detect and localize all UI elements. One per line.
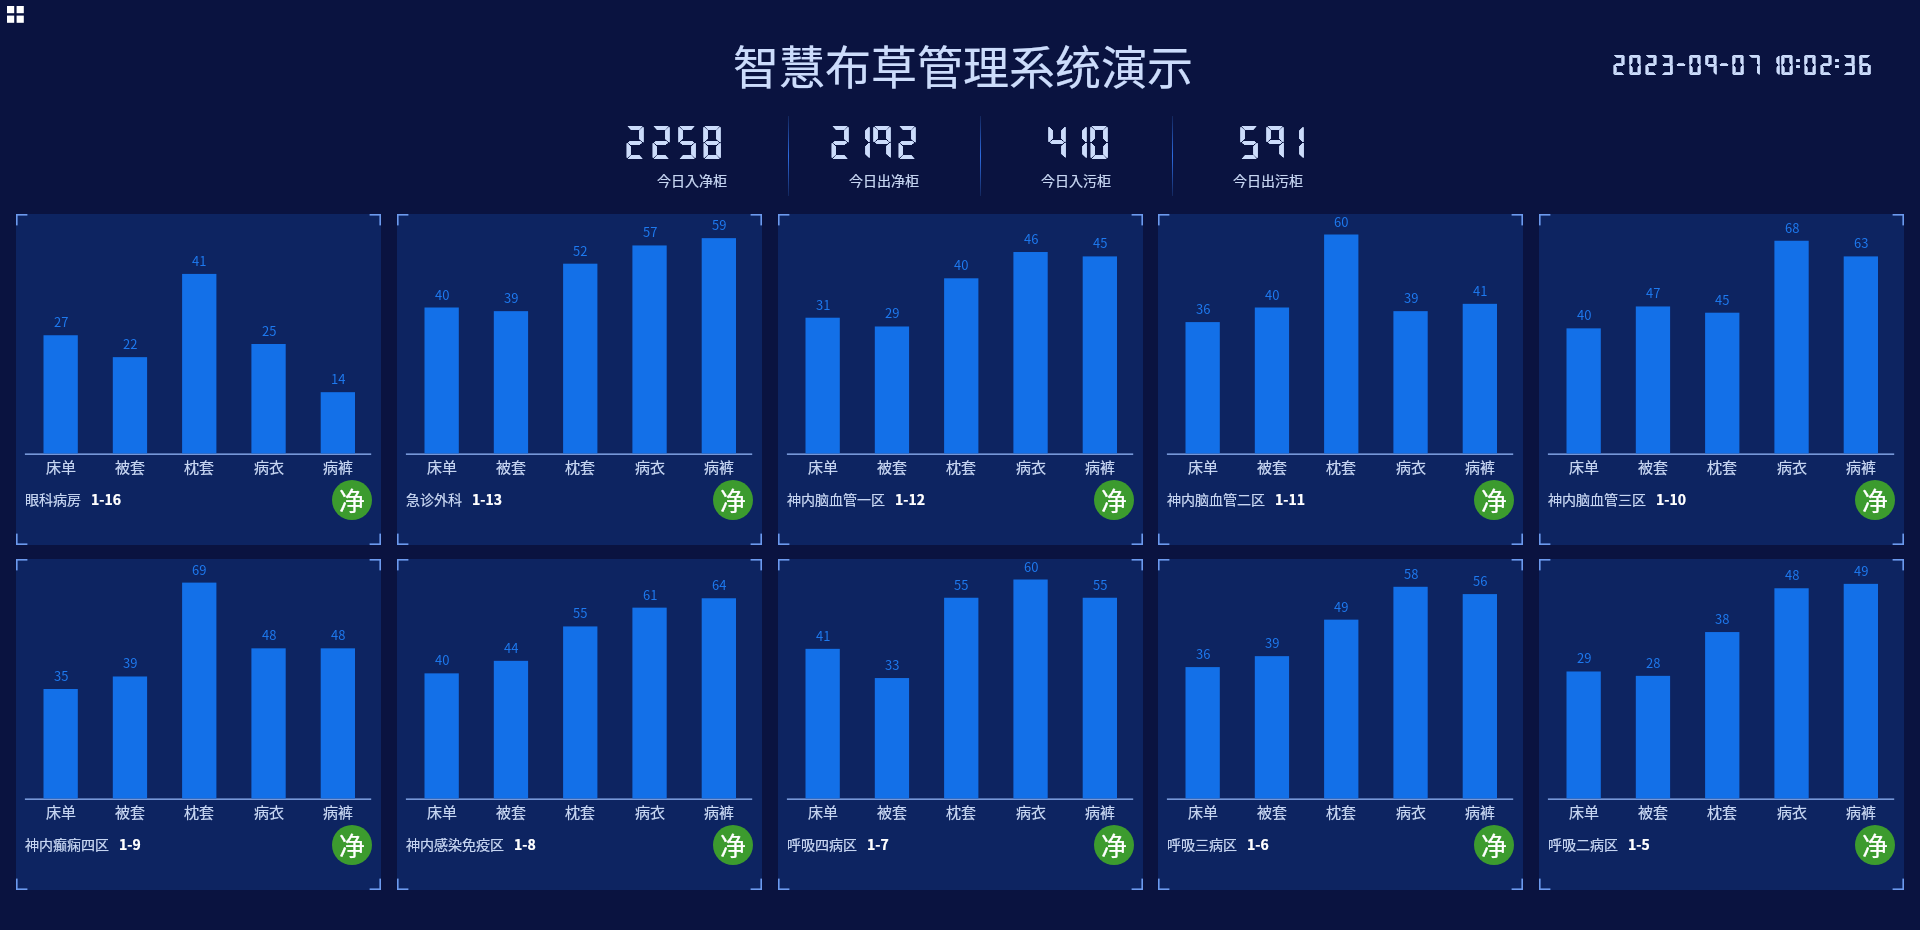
staticText: 神内癫痫四区 (25, 834, 109, 854)
button[interactable]: 35 (16, 559, 381, 890)
staticText: 9 (1703, 52, 1719, 78)
staticText: 0 (1779, 52, 1795, 78)
staticText (1757, 52, 1773, 78)
staticText: 2 (1818, 52, 1834, 78)
button[interactable]: 净 clean status (332, 480, 372, 520)
staticText: 6 (1857, 52, 1873, 78)
staticText: 2 (622, 121, 648, 162)
staticText: 枕套 (565, 801, 596, 823)
button[interactable]: 40 (397, 214, 762, 545)
staticText: 3 (1659, 52, 1675, 78)
staticText: 28 (1646, 653, 1661, 672)
staticText: 49 (1854, 561, 1869, 580)
staticText: 1-10 (1656, 489, 1686, 509)
staticText: 8 (699, 121, 725, 162)
staticText: 48 (331, 625, 346, 644)
staticText (1757, 52, 1773, 78)
staticText: 3 (1841, 52, 1857, 78)
staticText: 3 (1659, 52, 1675, 78)
staticText: 2 (827, 121, 853, 162)
button[interactable]: 40 (1539, 214, 1904, 545)
staticText: 2 (1818, 52, 1834, 78)
staticText: 枕套 (1707, 801, 1738, 823)
staticText: 36 (1196, 299, 1211, 318)
staticText: 5 (1236, 121, 1262, 162)
staticText: 病裤 (704, 801, 735, 823)
staticText: 39 (504, 288, 519, 307)
staticText: 净 (720, 481, 747, 519)
staticText: 1 (1282, 121, 1308, 162)
staticText: 9 (869, 121, 895, 162)
staticText: 0 (1802, 52, 1818, 78)
button[interactable]: 27 (16, 214, 381, 545)
staticText: 病裤 (1085, 456, 1116, 478)
button[interactable]: 净 clean status (1855, 480, 1895, 520)
button[interactable]: 31 (778, 214, 1143, 545)
staticText: 9 (1262, 121, 1288, 162)
staticText: 0 (1627, 52, 1643, 78)
staticText: 3 (1841, 52, 1857, 78)
staticText: 病衣 (635, 801, 666, 823)
staticText: 1 (1766, 52, 1782, 78)
staticText: 52 (573, 241, 588, 260)
staticText: 36 (1196, 644, 1211, 663)
staticText: 2 (648, 121, 674, 162)
staticText: 2 (894, 121, 920, 162)
staticText: 1-5 (1628, 834, 1650, 854)
button[interactable]: 41 (778, 559, 1143, 890)
staticText: 41 (192, 251, 207, 270)
staticText: 60 (1024, 557, 1039, 576)
staticText: 急诊外科 (406, 489, 462, 509)
staticText: 35 (54, 666, 69, 685)
button[interactable]: 36 (1158, 559, 1523, 890)
button[interactable]: 净 clean status (1474, 480, 1514, 520)
staticText: 9 (869, 121, 895, 162)
button[interactable]: 36 (1158, 214, 1523, 545)
staticText: 病裤 (1846, 456, 1877, 478)
button[interactable]: 净 clean status (713, 480, 753, 520)
staticText: - (1716, 52, 1732, 78)
staticText: 40 (1577, 305, 1592, 324)
button[interactable]: Menu (6, 5, 26, 25)
staticText: 9 (869, 121, 895, 162)
staticText: 呼吸四病区 (787, 834, 857, 854)
staticText: 被套 (115, 801, 146, 823)
staticText: 床单 (1569, 456, 1600, 478)
staticText: 2 (1818, 52, 1834, 78)
staticText: 8 (699, 121, 725, 162)
staticText: : (1829, 52, 1845, 78)
button[interactable]: 29 (1539, 559, 1904, 890)
button[interactable]: 净 clean status (332, 825, 372, 865)
staticText: 病衣 (1777, 801, 1808, 823)
staticText: - (1716, 52, 1732, 78)
staticText: 今日出净柜 (849, 170, 919, 190)
staticText: 0 (1730, 52, 1746, 78)
staticText: 1 (1065, 121, 1091, 162)
staticText: 1-11 (1275, 489, 1305, 509)
button[interactable]: 净 clean status (1474, 825, 1514, 865)
staticText: 2 (1643, 52, 1659, 78)
staticText: 9 (1262, 121, 1288, 162)
staticText: 3 (1659, 52, 1675, 78)
staticText: 9 (869, 121, 895, 162)
staticText: 40 (954, 255, 969, 274)
staticText: 1 (848, 121, 874, 162)
button[interactable]: 净 clean status (1094, 825, 1134, 865)
staticText: 7 (1746, 52, 1762, 78)
button[interactable]: 净 clean status (1094, 480, 1134, 520)
staticText: 床单 (427, 801, 458, 823)
staticText: 0 (1687, 52, 1703, 78)
button[interactable]: 净 clean status (1855, 825, 1895, 865)
staticText: 枕套 (946, 456, 977, 478)
staticText: 9 (1703, 52, 1719, 78)
staticText: 净 (1481, 481, 1508, 519)
staticText: 被套 (1638, 801, 1669, 823)
staticText: 22 (123, 334, 138, 353)
staticText: 病裤 (323, 456, 354, 478)
staticText: 0 (1627, 52, 1643, 78)
button[interactable]: 净 clean status (713, 825, 753, 865)
staticText: 57 (643, 222, 658, 241)
staticText: 4 (1044, 121, 1070, 162)
button[interactable]: 40 (397, 559, 762, 890)
staticText: 神内脑血管二区 (1167, 489, 1265, 509)
